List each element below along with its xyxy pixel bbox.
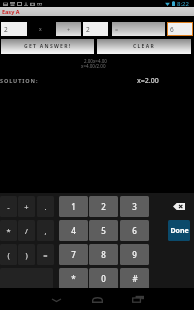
staticText: 1 bbox=[71, 201, 76, 212]
button[interactable]: = bbox=[112, 22, 165, 36]
staticText: 2 bbox=[101, 201, 106, 212]
staticText: 2 bbox=[4, 25, 8, 34]
button[interactable]: 8 bbox=[89, 244, 118, 265]
staticText: GET ANSWER! bbox=[24, 43, 72, 50]
button[interactable]: 3 bbox=[120, 196, 149, 217]
button[interactable]: ( bbox=[0, 244, 17, 265]
staticText: # bbox=[132, 273, 138, 284]
staticText: x=4.00/2.00 bbox=[81, 63, 106, 69]
staticText: 0 bbox=[101, 273, 106, 284]
button[interactable]: 9 bbox=[120, 244, 149, 265]
staticText: , bbox=[44, 226, 47, 236]
staticText: + bbox=[67, 26, 71, 33]
button[interactable]: 6 bbox=[167, 22, 193, 36]
button[interactable]: GET ANSWER! bbox=[1, 39, 94, 54]
button[interactable]: Recents bbox=[128, 288, 148, 310]
button[interactable]: Done bbox=[168, 220, 190, 241]
button[interactable]: / bbox=[18, 220, 35, 241]
staticText: 4 bbox=[71, 225, 76, 236]
button[interactable]: Back bbox=[46, 288, 66, 310]
staticText: ) bbox=[25, 250, 28, 260]
staticText: - bbox=[7, 202, 10, 212]
button[interactable]: Backspace bbox=[168, 196, 190, 217]
staticText: Easy A bbox=[2, 8, 20, 15]
staticText: * bbox=[71, 273, 76, 284]
staticText: . bbox=[44, 202, 47, 212]
staticText: = bbox=[43, 250, 48, 260]
button[interactable]: Home bbox=[87, 288, 107, 310]
staticText: 9 bbox=[132, 249, 137, 260]
button[interactable]: 6 bbox=[120, 220, 149, 241]
button[interactable]: 2 bbox=[89, 196, 118, 217]
button[interactable]: CLEAR bbox=[97, 39, 191, 54]
staticText: 2 bbox=[86, 25, 90, 34]
button[interactable]: # bbox=[120, 268, 149, 289]
staticText: * bbox=[6, 226, 11, 236]
button[interactable]: 5 bbox=[89, 220, 118, 241]
button[interactable]: 1 bbox=[59, 196, 88, 217]
button[interactable]: * bbox=[59, 268, 88, 289]
staticText: ( bbox=[7, 250, 10, 260]
button[interactable]: 7 bbox=[59, 244, 88, 265]
button[interactable]: ) bbox=[18, 244, 35, 265]
button[interactable]: 2 bbox=[1, 22, 27, 36]
staticText: 2.00x=4.00 bbox=[84, 58, 107, 64]
staticText: 7 bbox=[71, 249, 76, 260]
button[interactable]: 4 bbox=[59, 220, 88, 241]
staticText: = bbox=[115, 26, 119, 33]
staticText: 6 bbox=[170, 25, 174, 34]
staticText: x=2.00 bbox=[137, 76, 159, 86]
staticText: / bbox=[25, 226, 28, 236]
staticText: 8 bbox=[101, 249, 106, 260]
button[interactable] bbox=[0, 268, 53, 289]
staticText: 6 bbox=[132, 225, 137, 236]
staticText: SOLUTION: bbox=[0, 77, 39, 84]
button[interactable]: = bbox=[37, 244, 54, 265]
staticText: CLEAR bbox=[133, 43, 156, 50]
button[interactable]: + bbox=[18, 196, 35, 217]
button[interactable]: . bbox=[37, 196, 54, 217]
button[interactable]: * bbox=[0, 220, 17, 241]
button[interactable]: 2 bbox=[83, 22, 108, 36]
button[interactable]: + bbox=[56, 22, 81, 36]
staticText: + bbox=[24, 202, 29, 212]
button[interactable]: - bbox=[0, 196, 17, 217]
staticText: 3 bbox=[132, 201, 137, 212]
staticText: Done bbox=[170, 226, 189, 236]
staticText: x bbox=[39, 26, 42, 33]
staticText: 8:22 bbox=[177, 0, 189, 7]
staticText: 5 bbox=[101, 225, 106, 236]
button[interactable]: 0 bbox=[89, 268, 118, 289]
button[interactable]: , bbox=[37, 220, 54, 241]
button[interactable]: Easy A bbox=[0, 7, 194, 16]
